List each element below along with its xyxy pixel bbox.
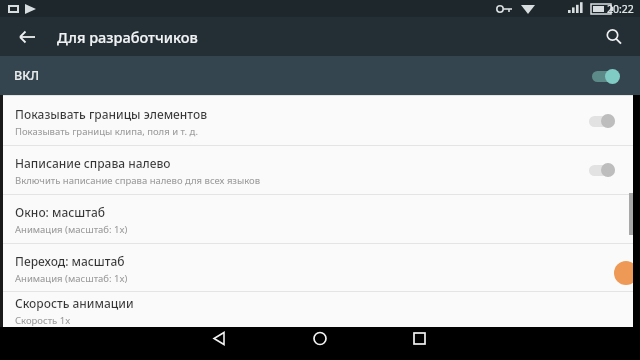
button[interactable]: Back — [12, 22, 42, 52]
staticText: Показывать границы клипа, поля и т. д. — [15, 125, 199, 138]
staticText: 20:22 — [607, 2, 634, 16]
staticText: Скорость анимации — [15, 295, 134, 311]
button[interactable]: Окно: масштаб — [3, 194, 633, 243]
staticText: Написание справа налево — [15, 155, 171, 171]
staticText: ВКЛ — [14, 67, 40, 84]
staticText: Для разработчиков — [57, 27, 198, 47]
staticText: Анимация (масштаб: 1x) — [15, 223, 128, 236]
button[interactable]: Переход: масштаб — [3, 243, 633, 291]
staticText: Анимация (масштаб: 1x) — [15, 272, 128, 285]
button[interactable]: Search — [598, 21, 630, 53]
staticText: Показывать границы элементов — [15, 106, 208, 122]
staticText: Скорость 1x — [15, 314, 71, 327]
button[interactable]: ВКЛ — [0, 56, 640, 95]
button[interactable]: Показывать границы элементов — [3, 95, 633, 145]
button[interactable]: Написание справа налево — [3, 145, 633, 194]
staticText: Окно: масштаб — [15, 204, 106, 220]
button[interactable]: Скорость анимации — [3, 291, 633, 327]
staticText: Включить написание справа налево для все… — [15, 174, 261, 187]
staticText: Переход: масштаб — [15, 253, 125, 269]
